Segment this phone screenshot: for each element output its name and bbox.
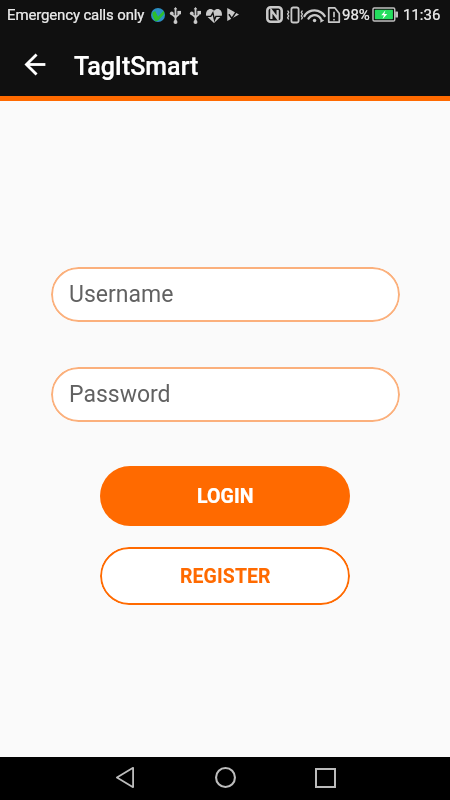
button[interactable]: LOGIN — [100, 466, 350, 526]
staticText: 98% — [342, 6, 370, 24]
staticText: TagItSmart — [74, 52, 199, 81]
button[interactable]: Back — [75, 757, 175, 800]
button[interactable]: Recents — [275, 757, 375, 800]
button[interactable]: Back — [12, 40, 58, 86]
button[interactable]: Username — [51, 267, 400, 322]
button[interactable]: Home — [175, 757, 275, 800]
staticText: Username — [69, 281, 174, 308]
staticText: Emergency calls only — [7, 6, 145, 24]
staticText: Password — [69, 381, 171, 408]
staticText: LOGIN — [197, 485, 254, 508]
staticText: REGISTER — [180, 565, 271, 588]
button[interactable]: REGISTER — [100, 547, 350, 605]
staticText: 11:36 — [403, 6, 441, 24]
button[interactable]: Password — [51, 367, 400, 422]
